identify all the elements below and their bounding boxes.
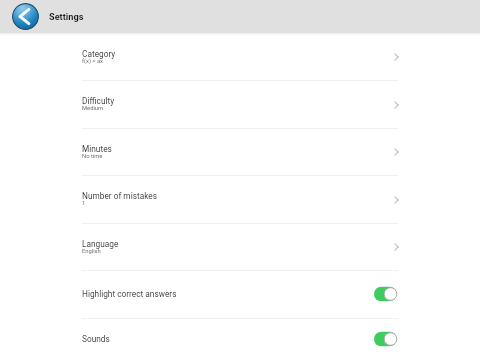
button[interactable]: Difficulty [0,81,480,129]
staticText: Settings [49,11,84,22]
staticText: No time [82,153,103,160]
button[interactable]: Toggle Highlight correct answers [374,286,398,302]
staticText: Language [82,239,119,249]
button[interactable]: Highlight correct answers [0,271,480,319]
button[interactable]: Language [0,224,480,271]
button[interactable]: Category [0,34,480,81]
staticText: Highlight correct answers [82,289,374,299]
staticText: Number of mistakes [82,191,157,201]
button[interactable]: Back [12,3,39,30]
button[interactable]: Number of mistakes [0,176,480,224]
staticText: f(x) = ax [82,58,103,65]
staticText: 1 [82,200,86,207]
staticText: Difficulty [82,96,115,106]
button[interactable]: Minutes [0,129,480,176]
button[interactable]: Toggle Sounds [374,331,398,347]
staticText: Medium [82,105,104,112]
button[interactable]: Sounds [0,319,480,360]
staticText: Category [82,49,116,59]
staticText: English [82,248,101,255]
staticText: Sounds [82,334,374,344]
staticText: Minutes [82,144,112,154]
